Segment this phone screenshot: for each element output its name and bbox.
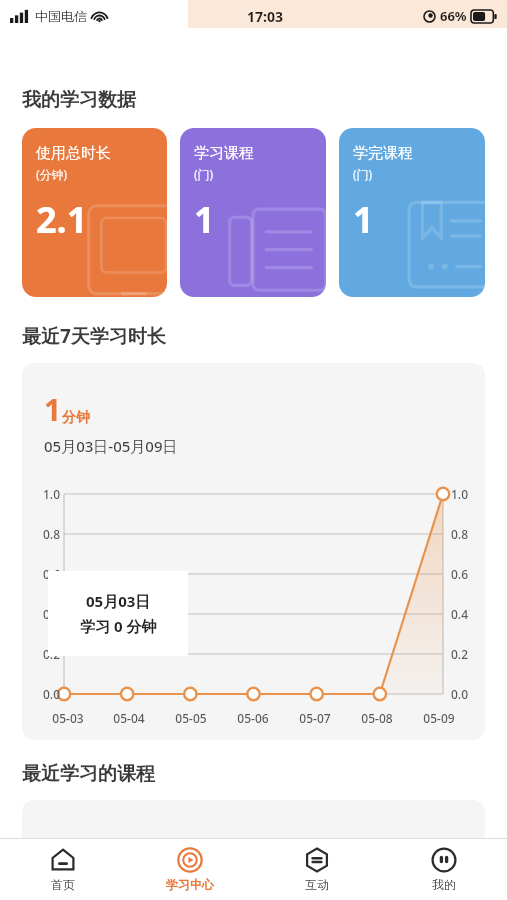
staticText: 1.0 [451, 486, 468, 502]
staticText: 0.4 [43, 606, 60, 622]
staticText: 互动 [305, 877, 329, 892]
other: 首页 [50, 847, 76, 873]
staticText: 学习中心 [166, 877, 214, 892]
staticText: 66% [440, 7, 467, 25]
staticText: 1 [44, 389, 62, 430]
button[interactable]: 首页 [0, 839, 126, 900]
staticText: 0.8 [451, 526, 468, 542]
staticText: 05月03日-05月09日 [44, 436, 178, 456]
staticText: 0.6 [451, 566, 468, 582]
staticText: 0.6 [43, 566, 60, 582]
staticText: 1.0 [43, 486, 60, 502]
staticText: 17:03 [247, 7, 283, 26]
staticText: 0.4 [451, 606, 468, 622]
button[interactable] [22, 800, 485, 860]
button[interactable]: 使用总时长 [22, 128, 167, 297]
staticText: 分钟 [62, 409, 90, 427]
staticText: 学习 0 分钟 [80, 616, 157, 636]
staticText: 中国电信 [35, 8, 87, 24]
staticText: (门) [353, 166, 373, 182]
button[interactable]: 学习中心 [126, 839, 253, 900]
staticText: 05-06 [237, 710, 269, 726]
staticText: 使用总时长 [36, 144, 111, 163]
button[interactable]: 我的 [380, 839, 507, 900]
staticText: 0.2 [451, 646, 468, 662]
staticText: 05-05 [175, 710, 207, 726]
staticText: 2.1 [36, 195, 88, 244]
staticText: 我的 [432, 877, 456, 892]
staticText: 0.2 [43, 646, 60, 662]
other: 互动 [304, 847, 330, 873]
staticText: 0.0 [451, 686, 468, 702]
staticText: 1 [194, 195, 215, 244]
staticText: 1 [353, 195, 374, 244]
staticText: 首页 [51, 877, 75, 892]
staticText: 学习课程 [194, 144, 254, 163]
staticText: 05-03 [52, 710, 84, 726]
staticText: 学完课程 [353, 144, 413, 163]
button[interactable]: 学完课程 [339, 128, 485, 297]
staticText: (分钟) [36, 166, 68, 182]
staticText: 05-07 [299, 710, 331, 726]
other: 学习中心 [177, 847, 203, 873]
staticText: 05-09 [423, 710, 455, 726]
staticText: 最近7天学习时长 [22, 323, 166, 349]
staticText: 我的学习数据 [22, 88, 136, 112]
staticText: 05月03日 [86, 591, 151, 611]
staticText: 0.8 [43, 526, 60, 542]
staticText: (门) [194, 166, 214, 182]
staticText: 0.0 [43, 686, 60, 702]
staticText: 05-08 [361, 710, 393, 726]
button[interactable]: 互动 [253, 839, 380, 900]
other: 我的 [431, 847, 457, 873]
staticText: 最近学习的课程 [22, 762, 155, 786]
button[interactable]: 学习课程 [180, 128, 326, 297]
staticText: 05-04 [113, 710, 145, 726]
